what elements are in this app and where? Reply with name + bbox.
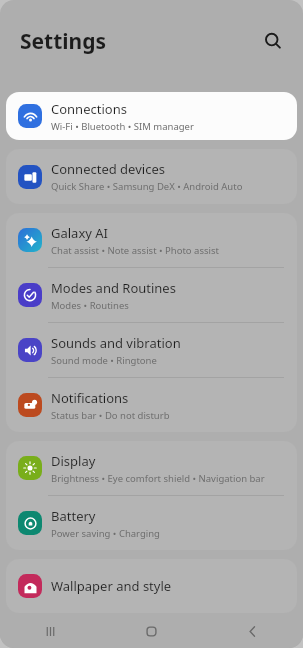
staticText: Status bar • Do not disturb xyxy=(51,409,170,422)
staticText: Quick Share • Samsung DeX • Android Auto xyxy=(51,180,243,193)
staticText: Galaxy AI xyxy=(51,224,109,242)
staticText: Sounds and vibration xyxy=(51,334,181,352)
button[interactable]: Modes and Routines xyxy=(6,268,297,322)
staticText: Brightness • Eye comfort shield • Naviga… xyxy=(51,472,265,485)
button[interactable]: Connected devices xyxy=(6,149,297,204)
staticText: Modes • Routines xyxy=(51,299,129,312)
button[interactable]: Galaxy AI xyxy=(6,213,297,267)
staticText: Chat assist • Note assist • Photo assist xyxy=(51,244,219,257)
button[interactable]: Back xyxy=(202,614,303,648)
staticText: Connected devices xyxy=(51,160,165,178)
button[interactable]: Search settings xyxy=(256,24,290,58)
button[interactable]: Sounds and vibration xyxy=(6,323,297,377)
button[interactable]: Notifications xyxy=(6,378,297,432)
staticText: Wallpaper and style xyxy=(51,577,172,595)
staticText: Battery xyxy=(51,507,96,525)
staticText: Settings xyxy=(20,27,107,56)
staticText: Modes and Routines xyxy=(51,279,176,297)
button[interactable]: Wallpaper and style xyxy=(6,559,297,613)
button[interactable]: Home xyxy=(101,614,202,648)
staticText: Wi-Fi • Bluetooth • SIM manager xyxy=(51,120,194,133)
staticText: Display xyxy=(51,452,96,470)
button[interactable]: Recent apps xyxy=(0,614,101,648)
staticText: Notifications xyxy=(51,389,129,407)
button[interactable]: Display xyxy=(6,441,297,495)
staticText: Power saving • Charging xyxy=(51,527,160,540)
staticText: Connections xyxy=(51,100,127,118)
staticText: Sound mode • Ringtone xyxy=(51,354,157,367)
button[interactable]: Battery xyxy=(6,496,297,550)
button[interactable]: Connections xyxy=(6,92,297,140)
